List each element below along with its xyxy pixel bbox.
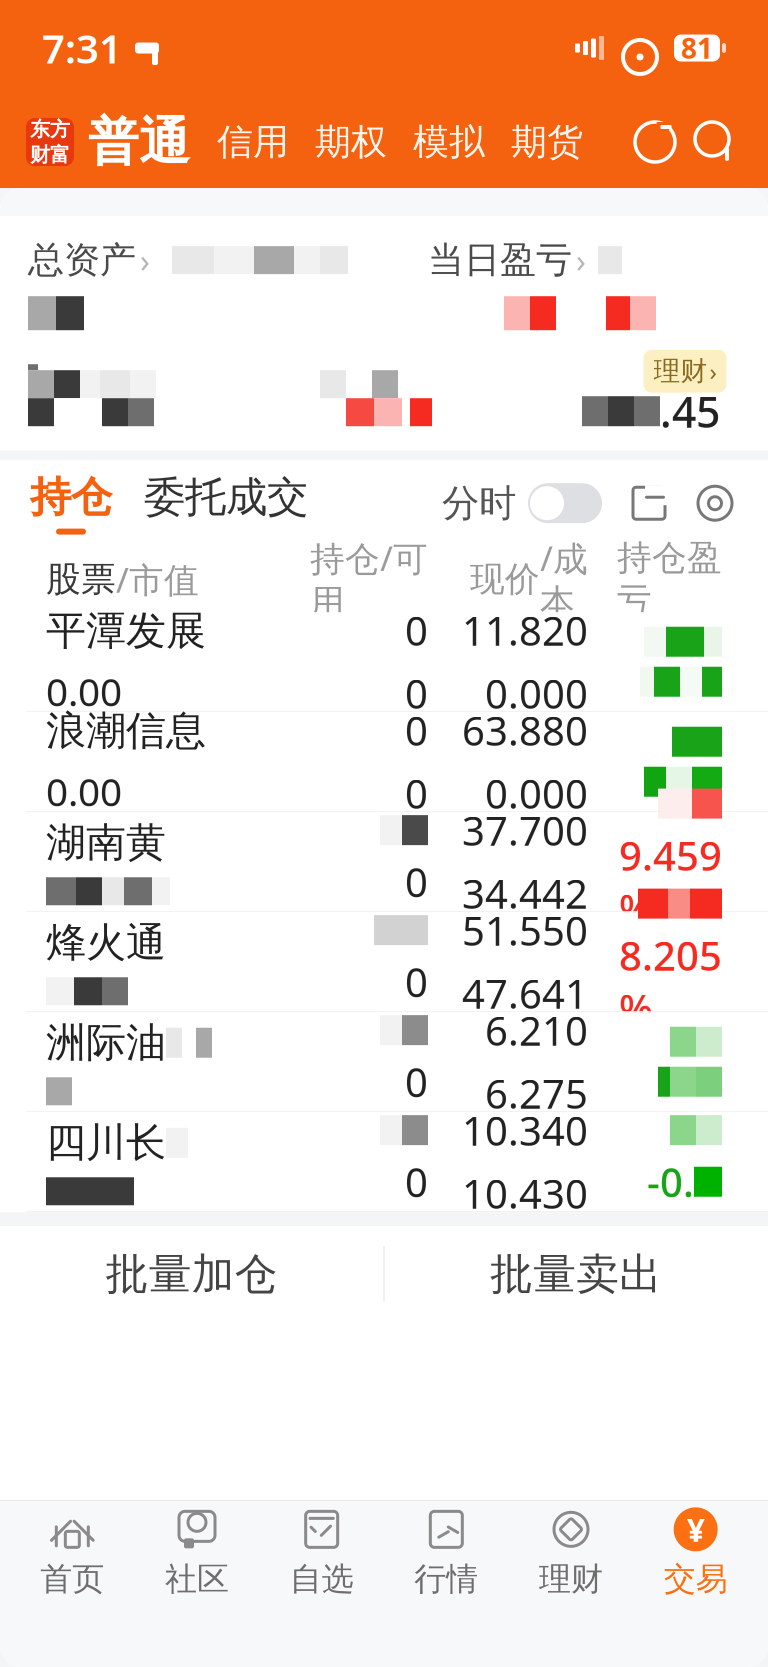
staticText: 0 bbox=[405, 1055, 428, 1108]
button[interactable]: 普通 bbox=[74, 111, 204, 173]
staticText: 社区 bbox=[165, 1559, 229, 1599]
button[interactable]: 社区 bbox=[135, 1501, 259, 1605]
staticText: 平潭发展 bbox=[46, 606, 206, 656]
staticText: 11.820 bbox=[462, 604, 588, 657]
staticText: 0 bbox=[405, 1155, 428, 1208]
staticText: 0 bbox=[405, 704, 428, 757]
button[interactable]: 分享 bbox=[622, 476, 676, 530]
staticText: 浪潮信息 bbox=[46, 706, 206, 756]
button[interactable]: 批量卖出 bbox=[384, 1226, 768, 1322]
staticText: 首页 bbox=[40, 1559, 104, 1599]
staticText: 总资产 bbox=[28, 238, 136, 282]
staticText: 81 bbox=[681, 29, 713, 67]
staticText: 0 bbox=[405, 955, 428, 1008]
staticText: 模拟 bbox=[413, 120, 485, 164]
staticText: 0.00 bbox=[46, 666, 122, 717]
staticText: 批量卖出 bbox=[490, 1248, 662, 1300]
button[interactable]: 首页 bbox=[10, 1501, 135, 1605]
staticText: 四川长 bbox=[46, 1118, 166, 1167]
staticText: 37.700 bbox=[462, 804, 588, 857]
staticText: 理财 bbox=[539, 1559, 603, 1599]
button[interactable]: 洲际油 bbox=[0, 1012, 768, 1112]
button[interactable]: 设置 bbox=[688, 476, 742, 530]
button[interactable]: 信用 bbox=[204, 120, 302, 164]
staticText: 0 bbox=[405, 667, 428, 720]
button[interactable]: 行情 bbox=[384, 1501, 509, 1605]
button[interactable]: 分时 bbox=[442, 480, 602, 526]
button[interactable]: 湖南黄 bbox=[0, 812, 768, 912]
staticText: 交易 bbox=[664, 1559, 728, 1599]
staticText: 6.275 bbox=[485, 1067, 588, 1120]
staticText: 47.641 bbox=[462, 967, 588, 1020]
staticText: 东方 bbox=[30, 117, 70, 141]
staticText: 持仓/可用 bbox=[310, 535, 428, 623]
staticText: .45 bbox=[660, 383, 720, 440]
button[interactable]: 烽火通 bbox=[0, 912, 768, 1012]
staticText: 行情 bbox=[414, 1559, 478, 1599]
staticText: 63.880 bbox=[462, 704, 588, 757]
staticText: 0.000 bbox=[485, 667, 588, 720]
staticText: 期货 bbox=[511, 120, 583, 164]
staticText: 0 bbox=[405, 855, 428, 908]
button[interactable]: ¥ bbox=[633, 1501, 758, 1605]
staticText: 51.550 bbox=[462, 904, 588, 957]
staticText: 0 bbox=[405, 767, 428, 820]
button[interactable]: 批量加仓 bbox=[0, 1226, 383, 1322]
staticText: -0. bbox=[647, 1155, 694, 1208]
staticText: 普通 bbox=[88, 111, 190, 173]
staticText: 6.210 bbox=[485, 1004, 588, 1057]
button[interactable]: 四川长 bbox=[0, 1112, 768, 1212]
staticText: 7:31 bbox=[42, 21, 122, 74]
staticText: 0.00 bbox=[46, 766, 122, 817]
button[interactable]: 自选 bbox=[259, 1501, 384, 1605]
staticText: 信用 bbox=[217, 120, 289, 164]
staticText: 财富 bbox=[30, 142, 70, 167]
staticText: 洲际油 bbox=[46, 1018, 166, 1067]
button[interactable]: 模拟 bbox=[400, 120, 498, 164]
staticText: 委托成交 bbox=[144, 472, 308, 523]
button[interactable]: 持仓 bbox=[26, 472, 116, 535]
button[interactable]: 期权 bbox=[302, 120, 400, 164]
staticText: /成本 bbox=[540, 535, 588, 623]
staticText: 9.459% bbox=[619, 829, 722, 935]
staticText: › bbox=[140, 239, 150, 281]
button[interactable]: 搜索 bbox=[688, 115, 742, 169]
button[interactable]: 委托成交 bbox=[116, 472, 308, 535]
staticText: › bbox=[709, 355, 716, 387]
staticText: 现价 bbox=[470, 558, 540, 600]
staticText: 持仓盈亏 bbox=[617, 537, 722, 622]
staticText: 理财 bbox=[653, 355, 707, 388]
button[interactable]: 刷新 bbox=[628, 115, 682, 169]
button[interactable]: 浪潮信息 bbox=[0, 712, 768, 812]
staticText: 当日盈亏 bbox=[428, 238, 572, 282]
staticText: 10.340 bbox=[462, 1104, 588, 1157]
staticText: 34.442 bbox=[462, 867, 588, 920]
staticText: 批量加仓 bbox=[106, 1248, 278, 1300]
staticText: ¥ bbox=[687, 1508, 705, 1551]
staticText: 自选 bbox=[290, 1559, 354, 1599]
staticText: 烽火通 bbox=[46, 918, 166, 967]
staticText: 期权 bbox=[315, 120, 387, 164]
staticText: /市值 bbox=[116, 556, 199, 602]
staticText: 持仓 bbox=[30, 472, 112, 523]
button[interactable]: 平潭发展 bbox=[0, 612, 768, 712]
button[interactable]: 理财 bbox=[509, 1501, 633, 1605]
staticText: › bbox=[576, 239, 586, 281]
staticText: 10.430 bbox=[462, 1167, 588, 1220]
staticText: 0 bbox=[405, 604, 428, 657]
staticText: 分时 bbox=[442, 480, 516, 526]
button[interactable]: 期货 bbox=[498, 120, 596, 164]
staticText: 8.205% bbox=[619, 929, 722, 1035]
staticText: 0.000 bbox=[485, 767, 588, 820]
staticText: 湖南黄 bbox=[46, 818, 166, 867]
staticText: 股票 bbox=[46, 558, 116, 600]
